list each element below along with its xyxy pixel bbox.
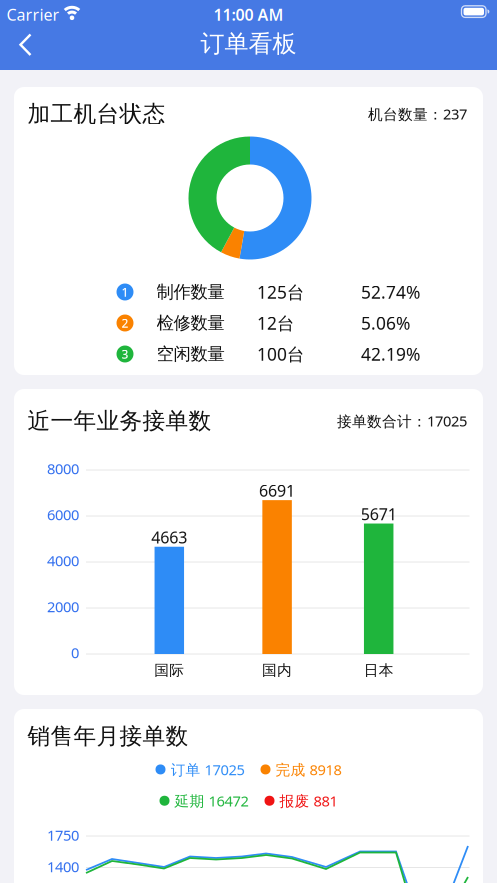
staticText: 1400	[47, 857, 79, 876]
staticText: 125台	[257, 280, 304, 303]
staticText: 8000	[47, 459, 79, 478]
staticText: 4663	[151, 527, 187, 548]
staticText: 5671	[361, 503, 397, 525]
staticText: 0	[71, 643, 79, 662]
staticText: 3	[121, 346, 128, 362]
button[interactable]: 延期 16472	[159, 791, 248, 810]
staticText: 国内	[262, 661, 292, 679]
button[interactable]: 报废 881	[264, 791, 337, 810]
staticText: 检修数量	[156, 312, 224, 334]
staticText: 国际	[154, 661, 184, 679]
staticText: 6000	[47, 505, 79, 524]
staticText: 接单数合计：17025	[337, 411, 467, 431]
button[interactable]: 完成 8918	[260, 760, 341, 779]
staticText: 12台	[257, 311, 294, 334]
staticText: 制作数量	[156, 281, 224, 303]
staticText: 加工机台状态	[27, 100, 165, 128]
staticText: 近一年业务接单数	[27, 407, 211, 435]
staticText: 订单 17025	[170, 760, 244, 779]
staticText: 空闲数量	[156, 343, 224, 365]
button[interactable]: 订单 17025	[155, 760, 244, 779]
staticText: 订单看板	[200, 29, 296, 58]
staticText: 11:00 AM	[213, 4, 283, 25]
staticText: 日本	[364, 661, 394, 679]
staticText: 机台数量：237	[368, 104, 467, 124]
staticText: 52.74%	[361, 280, 420, 303]
staticText: 100台	[257, 342, 304, 365]
staticText: 销售年月接单数	[27, 722, 188, 750]
staticText: Carrier	[6, 4, 59, 25]
staticText: 报废 881	[279, 791, 337, 810]
staticText: 42.19%	[361, 342, 420, 365]
staticText: 2	[121, 315, 128, 331]
staticText: 4000	[47, 551, 79, 570]
staticText: 完成 8918	[275, 760, 341, 779]
button[interactable]: Back	[0, 28, 44, 70]
staticText: 延期 16472	[174, 791, 248, 810]
staticText: 6691	[259, 480, 295, 501]
staticText: 1	[121, 284, 128, 300]
staticText: 2000	[47, 597, 79, 616]
staticText: 1750	[47, 825, 79, 845]
staticText: 5.06%	[361, 311, 410, 334]
